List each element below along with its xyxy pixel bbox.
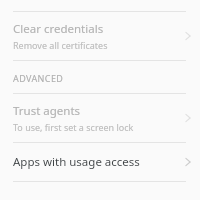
other: Trust agents (180, 111, 194, 125)
button[interactable]: Apps with usage access (0, 143, 200, 181)
button[interactable]: Clear credentials (0, 12, 200, 60)
staticText: Remove all certificates (13, 39, 108, 51)
staticText: To use, first set a screen lock (13, 121, 134, 133)
staticText: Clear credentials (13, 21, 104, 37)
button[interactable]: Trust agents (0, 94, 200, 142)
staticText: ADVANCED (13, 72, 64, 84)
staticText: Trust agents (13, 103, 81, 119)
other: Clear credentials (180, 29, 194, 43)
staticText: Apps with usage access (13, 154, 140, 170)
other: Apps with usage access (180, 155, 194, 169)
